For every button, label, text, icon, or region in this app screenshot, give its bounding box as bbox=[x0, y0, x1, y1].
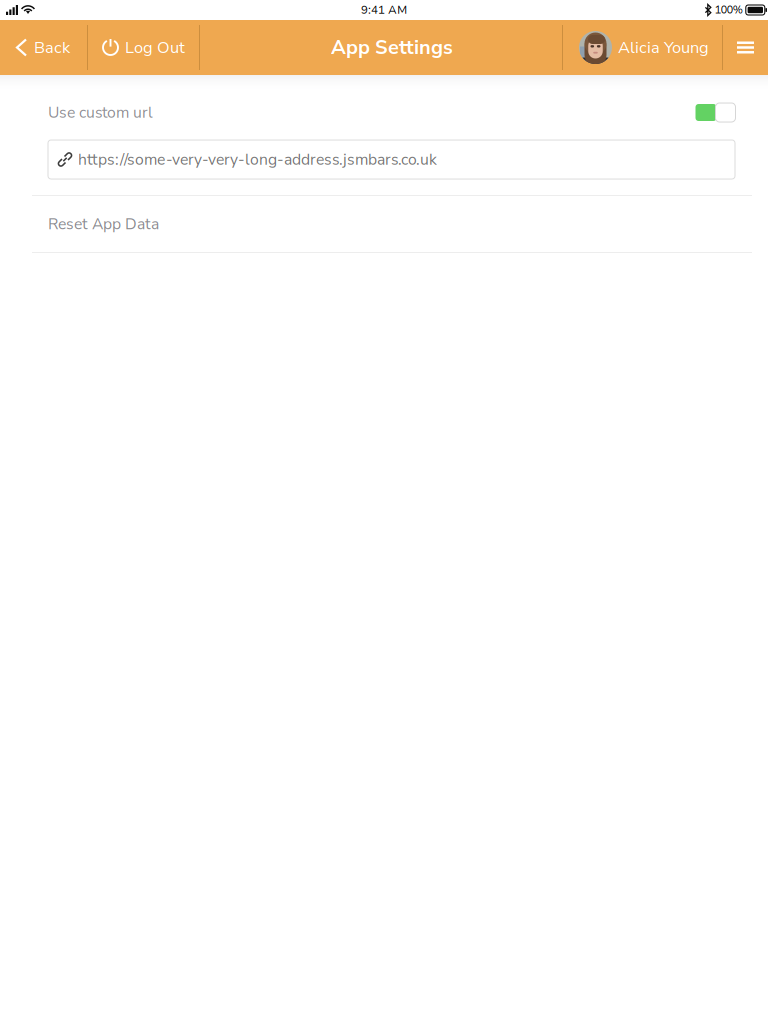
button[interactable]: Alicia Young bbox=[563, 20, 722, 75]
button[interactable]: Back bbox=[0, 20, 87, 75]
staticText: Alicia Young bbox=[618, 36, 709, 59]
staticText: https://some-very-very-long-address.jsmb… bbox=[78, 149, 437, 170]
staticText: Reset App Data bbox=[48, 213, 159, 235]
staticText: Use custom url bbox=[48, 102, 153, 123]
staticText: App Settings bbox=[331, 34, 453, 61]
staticText: 100% bbox=[715, 3, 743, 17]
staticText: Log Out bbox=[125, 36, 185, 59]
staticText: Back bbox=[34, 36, 70, 59]
button[interactable]: Use custom url bbox=[696, 102, 736, 122]
button[interactable]: Menu bbox=[723, 20, 768, 75]
button[interactable]: Reset App Data bbox=[0, 196, 768, 252]
staticText: 9:41 AM bbox=[361, 2, 407, 18]
button[interactable]: Log Out bbox=[88, 20, 199, 75]
